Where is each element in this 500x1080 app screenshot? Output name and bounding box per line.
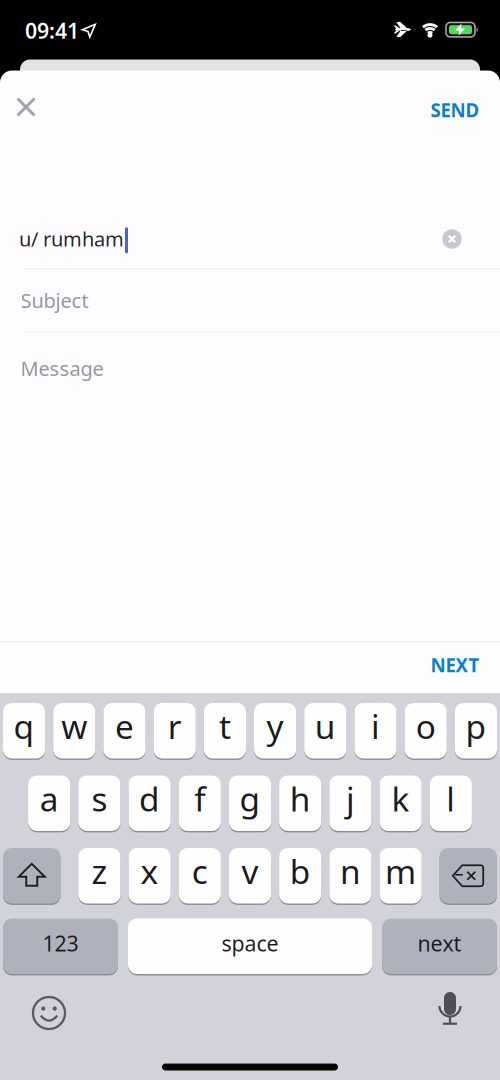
staticText: t bbox=[219, 704, 231, 748]
button[interactable]: NEXT bbox=[430, 653, 479, 677]
button[interactable]: u bbox=[304, 703, 346, 760]
button[interactable]: a bbox=[28, 775, 70, 833]
button[interactable]: o bbox=[405, 703, 447, 760]
button[interactable] bbox=[16, 97, 36, 117]
button[interactable] bbox=[3, 848, 60, 905]
staticText: SEND bbox=[430, 98, 479, 122]
button[interactable]: j bbox=[329, 775, 371, 833]
button[interactable]: SEND bbox=[430, 98, 479, 122]
staticText: j bbox=[346, 776, 355, 821]
button[interactable] bbox=[32, 996, 66, 1030]
staticText: l bbox=[446, 776, 455, 821]
staticText: Message bbox=[20, 355, 103, 382]
button[interactable]: e bbox=[103, 703, 146, 760]
staticText: w bbox=[61, 704, 87, 748]
staticText: y bbox=[267, 704, 284, 748]
staticText: v bbox=[241, 849, 258, 893]
staticText: 09:41 bbox=[25, 16, 79, 45]
button[interactable]: i bbox=[354, 703, 397, 760]
button[interactable]: t bbox=[204, 703, 246, 760]
staticText: o bbox=[416, 704, 436, 748]
staticText: p bbox=[465, 704, 486, 748]
button[interactable]: Message bbox=[0, 331, 500, 405]
staticText: m bbox=[385, 849, 416, 893]
button[interactable]: g bbox=[229, 775, 271, 833]
button[interactable]: z bbox=[78, 848, 120, 905]
staticText: s bbox=[91, 776, 107, 821]
staticText: a bbox=[40, 776, 59, 821]
button[interactable]: c bbox=[179, 848, 221, 905]
staticText: d bbox=[139, 776, 160, 821]
button[interactable] bbox=[437, 992, 463, 1030]
button[interactable]: Subject bbox=[0, 269, 500, 331]
staticText: c bbox=[192, 849, 208, 893]
staticText: u/ rumham bbox=[19, 225, 124, 252]
staticText: b bbox=[290, 849, 311, 893]
staticText: r bbox=[168, 704, 182, 748]
button[interactable]: next bbox=[382, 918, 497, 976]
staticText: Subject bbox=[20, 287, 88, 314]
staticText: space bbox=[221, 929, 278, 957]
button[interactable]: k bbox=[379, 775, 422, 833]
button[interactable]: s bbox=[78, 775, 120, 833]
button[interactable] bbox=[439, 848, 497, 905]
staticText: i bbox=[371, 704, 380, 748]
button[interactable]: x bbox=[128, 848, 171, 905]
button[interactable]: v bbox=[229, 848, 271, 905]
button[interactable]: m bbox=[379, 848, 422, 905]
staticText: g bbox=[239, 776, 260, 821]
button[interactable] bbox=[442, 229, 462, 249]
button[interactable]: d bbox=[128, 775, 171, 833]
staticText: z bbox=[91, 849, 107, 893]
staticText: k bbox=[392, 776, 410, 821]
button[interactable]: p bbox=[455, 703, 497, 760]
staticText: u bbox=[315, 704, 336, 748]
staticText: h bbox=[290, 776, 311, 821]
button[interactable]: 123 bbox=[3, 918, 118, 976]
staticText: e bbox=[115, 704, 134, 748]
staticText: x bbox=[141, 849, 159, 893]
staticText: q bbox=[14, 704, 35, 748]
button[interactable]: w bbox=[53, 703, 95, 760]
staticText: f bbox=[194, 776, 205, 821]
staticText: n bbox=[340, 849, 361, 893]
button[interactable]: n bbox=[329, 848, 371, 905]
button[interactable]: r bbox=[154, 703, 196, 760]
button[interactable]: b bbox=[279, 848, 321, 905]
button[interactable]: l bbox=[430, 775, 472, 833]
button[interactable]: space bbox=[128, 918, 372, 976]
button[interactable]: h bbox=[279, 775, 321, 833]
button[interactable]: y bbox=[254, 703, 296, 760]
staticText: next bbox=[417, 929, 461, 957]
button[interactable]: u/ rumham bbox=[0, 211, 500, 267]
button[interactable]: q bbox=[3, 703, 45, 760]
button[interactable]: f bbox=[179, 775, 221, 833]
staticText: 123 bbox=[42, 929, 78, 957]
staticText: NEXT bbox=[430, 653, 479, 677]
